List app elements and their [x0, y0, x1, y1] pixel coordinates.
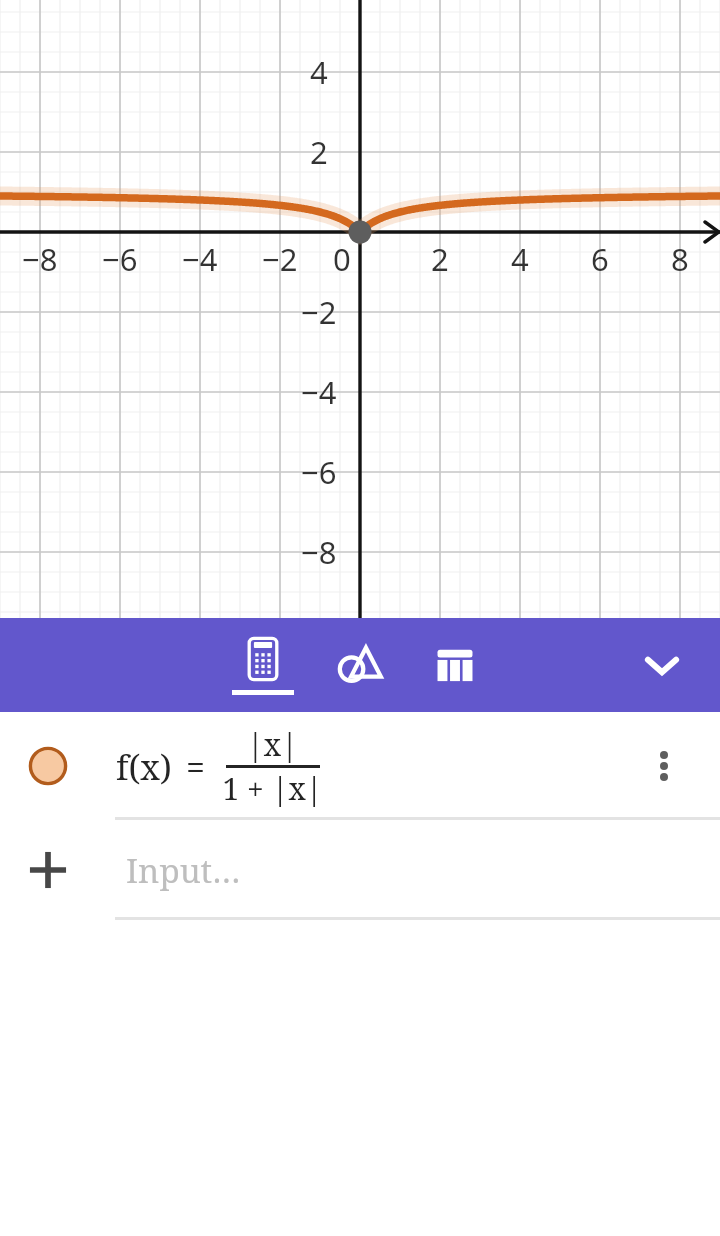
- staticText: −6: [301, 451, 337, 493]
- staticText: −8: [301, 531, 337, 573]
- staticText: 2: [310, 131, 328, 173]
- button[interactable]: Add new input: [0, 820, 720, 920]
- staticText: −8: [22, 238, 58, 280]
- button[interactable]: Table of values: [424, 618, 486, 712]
- staticText: 8: [671, 238, 689, 280]
- staticText: 6: [591, 238, 609, 280]
- staticText: 0: [333, 238, 351, 280]
- staticText: 1 + |x|: [222, 768, 323, 809]
- staticText: 4: [310, 51, 328, 93]
- button[interactable]: Geometry tools: [328, 618, 390, 712]
- staticText: f(x): [116, 744, 172, 790]
- staticText: 2: [431, 238, 449, 280]
- staticText: 4: [511, 238, 529, 280]
- staticText: |x|: [247, 724, 298, 765]
- button[interactable]: Add new input: [20, 842, 76, 898]
- staticText: −6: [102, 238, 138, 280]
- staticText: −4: [301, 371, 337, 413]
- button[interactable]: More options for f: [634, 736, 694, 796]
- staticText: −2: [262, 238, 298, 280]
- button[interactable]: Toggle visibility of f: [20, 738, 76, 794]
- button[interactable]: Toggle visibility of f: [0, 712, 720, 820]
- staticText: −4: [182, 238, 218, 280]
- staticText: =: [186, 744, 206, 790]
- staticText: Input…: [126, 848, 241, 893]
- button[interactable]: Calculator: [232, 618, 294, 712]
- staticText: −2: [301, 291, 337, 333]
- button[interactable]: Collapse panel: [632, 635, 692, 695]
